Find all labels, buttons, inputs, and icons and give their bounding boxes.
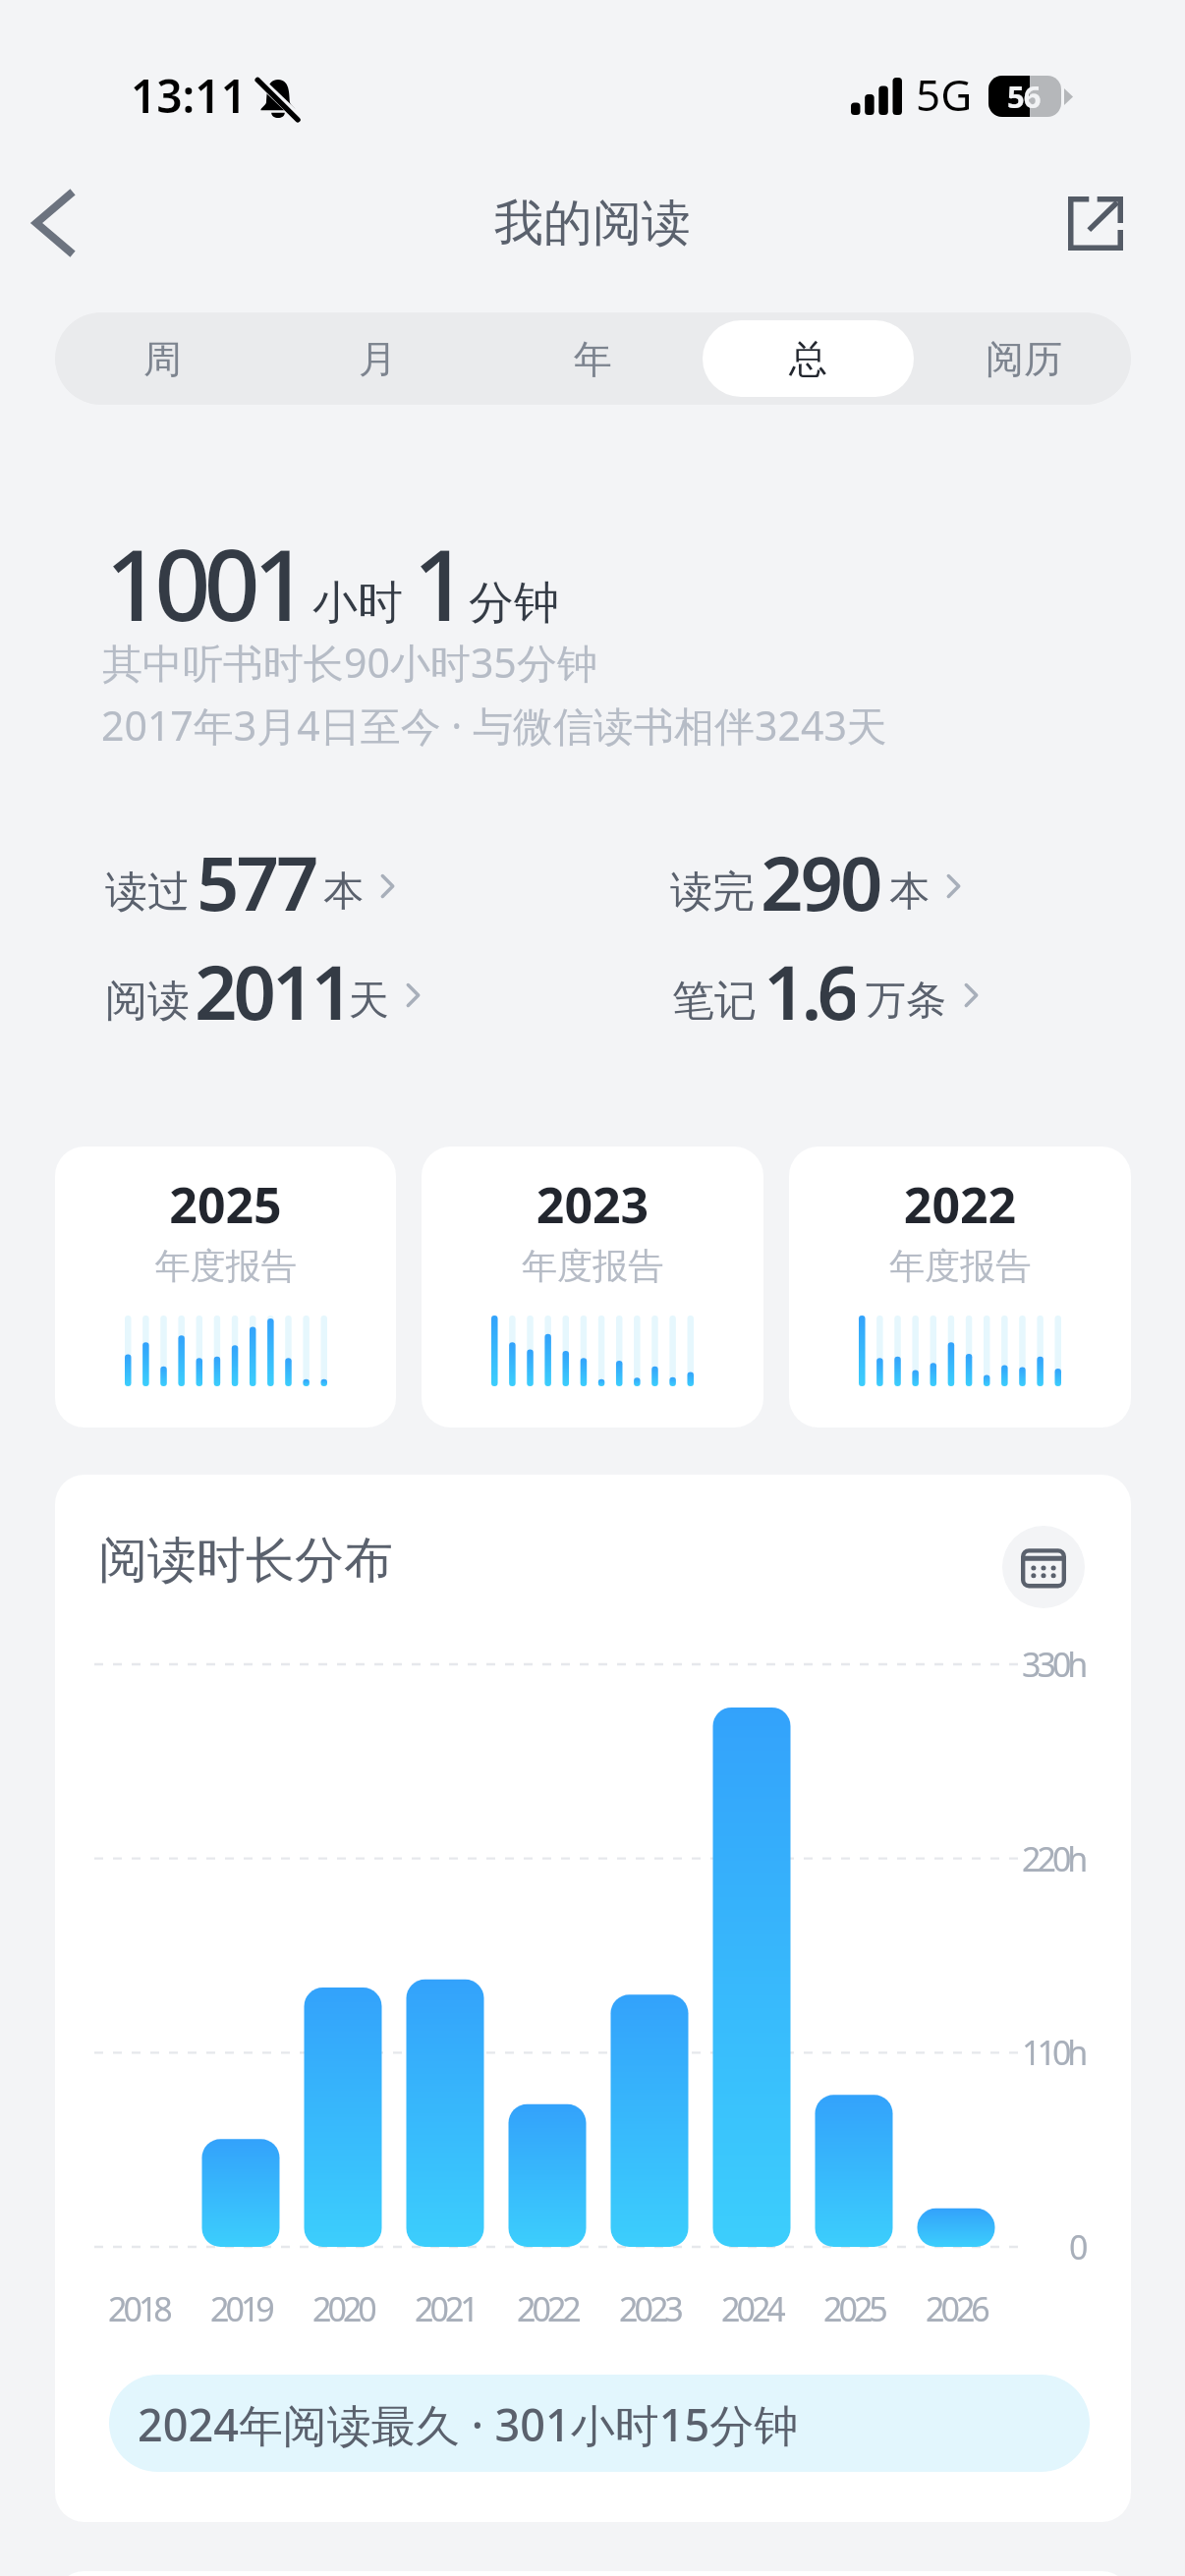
staticText: 小时 [312,575,403,632]
staticText: 周 [143,335,182,383]
staticText: 天 [349,976,389,1027]
staticText: 其中听书时长90小时35分钟 [102,635,597,690]
staticText: 56 [1007,76,1041,117]
staticText: 2025 [823,2286,884,2331]
button[interactable]: 2025 [55,1147,396,1428]
staticText: 577 [197,831,316,920]
staticText: 2022 [789,1171,1131,1238]
button[interactable]: 总 [703,320,914,397]
staticText: 本 [323,867,364,918]
staticText: 2019 [210,2286,271,2331]
staticText: 笔记 [672,975,757,1028]
staticText: 1 [413,516,470,649]
staticText: 2023 [422,1171,763,1238]
staticText: 阅历 [986,335,1062,383]
staticText: 1.6 [763,940,855,1029]
staticText: 阅读 [105,975,190,1028]
staticText: 2022 [517,2286,578,2331]
staticText: 290 [761,831,880,920]
staticText: 读过 [105,866,190,919]
staticText: 万条 [866,976,946,1027]
button[interactable]: Back [9,179,97,267]
staticText: 读完 [670,866,755,919]
staticText: 330h [1022,1642,1085,1687]
button[interactable]: Calendar [1002,1526,1085,1608]
button[interactable]: 月 [272,320,483,397]
staticText: 5G [916,65,973,124]
staticText: 本 [889,867,930,918]
staticText: 年 [574,335,612,383]
staticText: 年度报告 [55,1244,396,1288]
button[interactable]: Share [1051,179,1140,267]
staticText: 总 [789,335,827,383]
button[interactable]: 2022 [789,1147,1131,1428]
button[interactable]: 笔记 [671,951,988,1039]
staticText: 1001 [105,516,303,649]
staticText: 2026 [926,2286,987,2331]
button[interactable]: 周 [57,320,268,397]
staticText: 分钟 [469,575,559,632]
button[interactable]: 2024年阅读最久 · 301小时15分钟 [109,2375,1090,2472]
staticText: 2024 [721,2286,782,2331]
staticText: 13:11 [131,65,247,127]
staticText: 2011 [195,940,350,1029]
staticText: 110h [1022,2030,1085,2075]
staticText: 0 [1069,2224,1085,2269]
button[interactable]: 阅历 [918,320,1129,397]
button[interactable]: 阅读 [104,951,430,1039]
staticText: 年度报告 [422,1244,763,1288]
button[interactable]: 读完 [669,842,971,930]
staticText: 我的阅读 [0,193,1185,254]
staticText: 2023 [619,2286,680,2331]
button[interactable]: 年 [487,320,699,397]
button[interactable]: 读过 [104,842,405,930]
staticText: 220h [1022,1836,1085,1881]
staticText: 阅读时长分布 [98,1530,393,1592]
staticText: 2021 [415,2286,476,2331]
staticText: 2017年3月4日至今 · 与微信读书相伴3243天 [101,698,887,753]
button[interactable]: 2023 [422,1147,763,1428]
staticText: 2024年阅读最久 · 301小时15分钟 [138,2394,799,2454]
staticText: 年度报告 [789,1244,1131,1288]
staticText: 2020 [312,2286,373,2331]
staticText: 月 [359,335,397,383]
staticText: 2025 [55,1171,396,1238]
staticText: 2018 [108,2286,169,2331]
